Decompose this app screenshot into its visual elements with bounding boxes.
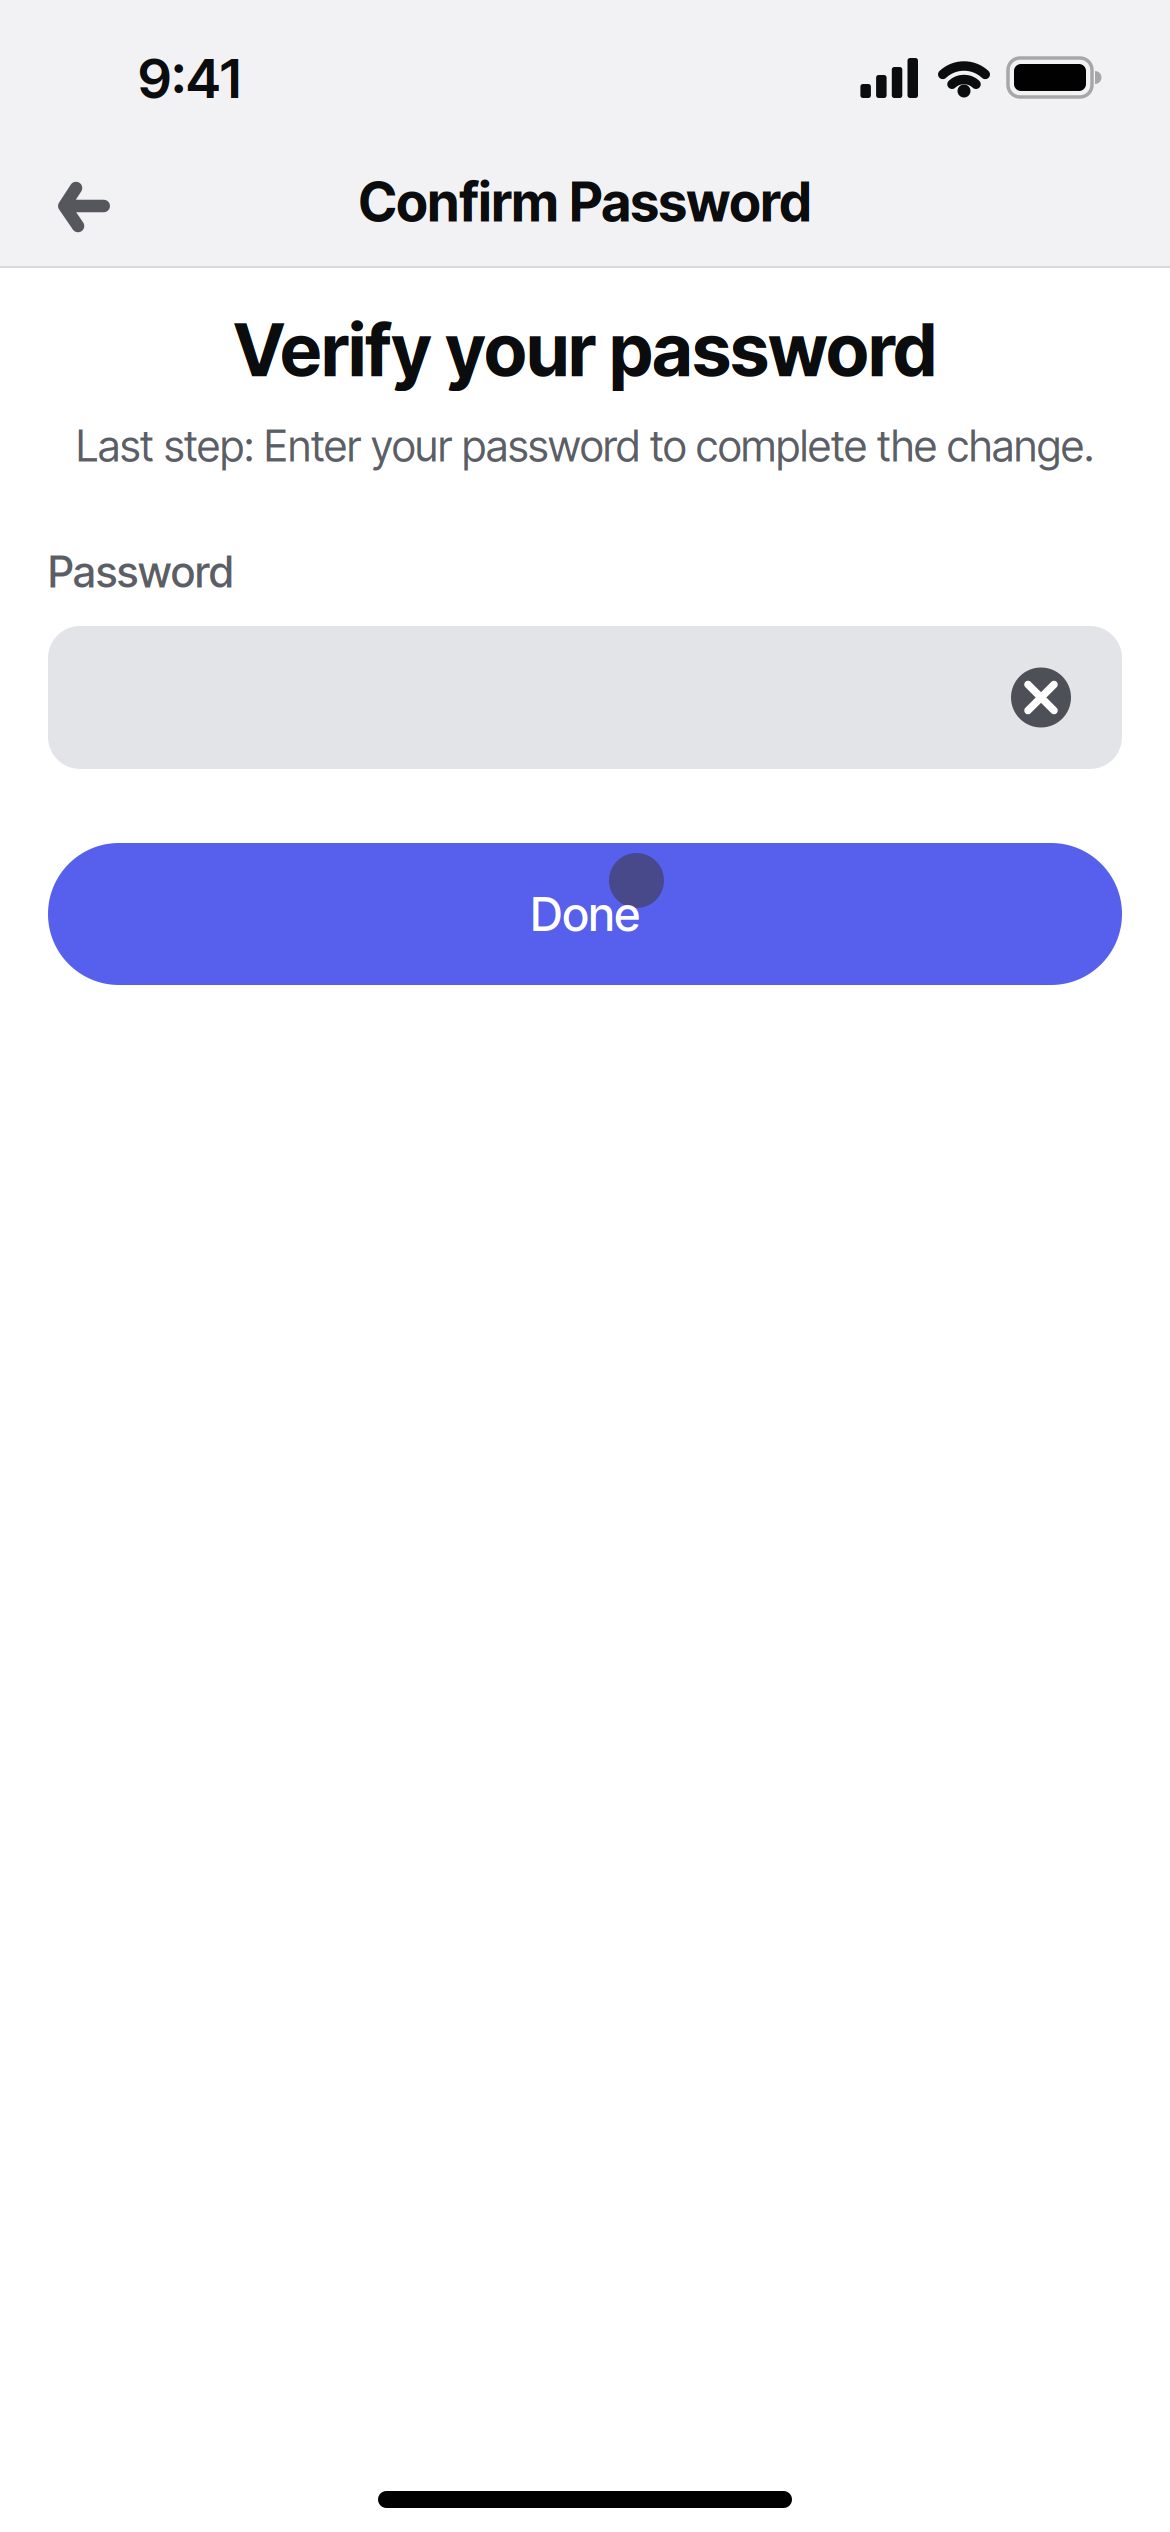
button[interactable]: Password — [0, 626, 1170, 769]
staticText: Confirm Password — [358, 170, 811, 234]
staticText: Last step: Enter your password to comple… — [76, 420, 1094, 472]
button[interactable]: Done — [0, 843, 1170, 985]
button[interactable]: Clear text — [1011, 667, 1071, 727]
staticText: Done — [530, 886, 639, 942]
staticText: Verify your password — [233, 306, 936, 393]
staticText: Password — [48, 546, 233, 598]
button[interactable]: Back — [0, 172, 110, 232]
staticText: 9:41 — [138, 45, 241, 111]
